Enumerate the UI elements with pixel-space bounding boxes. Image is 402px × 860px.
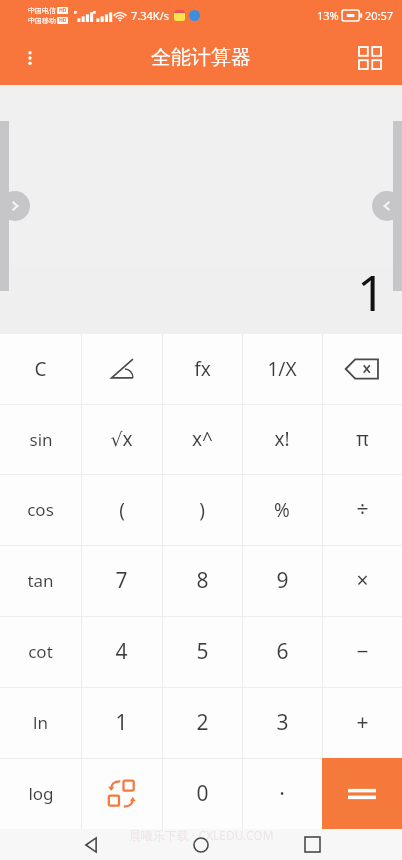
button[interactable]: ÷ (322, 474, 402, 545)
button[interactable]: 1 (81, 687, 162, 758)
button[interactable]: ln (0, 687, 81, 758)
button[interactable]: + (322, 687, 402, 758)
button[interactable]: 3 (242, 687, 322, 758)
staticText: HD (59, 7, 67, 14)
staticText: 20:57 (365, 8, 394, 23)
staticText: x^ (192, 426, 213, 452)
staticText: cos (27, 498, 54, 521)
button[interactable]: More options (8, 36, 52, 80)
staticText: 2 (196, 708, 209, 737)
staticText: · (279, 779, 285, 808)
staticText: fx (194, 356, 211, 382)
button[interactable]: 4 (81, 616, 162, 687)
staticText: cot (28, 640, 53, 663)
button[interactable]: x! (242, 404, 322, 474)
button[interactable]: 1/X (242, 334, 322, 404)
staticText: 1/X (267, 356, 297, 382)
staticText: sin (29, 428, 53, 451)
button[interactable]: ( (81, 474, 162, 545)
staticText: ( (119, 497, 125, 523)
button[interactable]: × (322, 545, 402, 616)
button[interactable]: 2 (162, 687, 242, 758)
staticText: % (274, 497, 290, 523)
staticText: 4 (115, 637, 128, 666)
staticText: ) (199, 497, 205, 523)
button[interactable]: 5 (162, 616, 242, 687)
button[interactable]: Grid view (348, 36, 392, 80)
staticText: 7.34K/s (131, 8, 169, 23)
button[interactable]: C (0, 334, 81, 404)
button[interactable]: % (242, 474, 322, 545)
staticText: 0 (196, 779, 209, 808)
staticText: 7 (115, 566, 128, 595)
button[interactable]: √x (81, 404, 162, 474)
button[interactable]: π (322, 404, 402, 474)
staticText: π (356, 426, 369, 452)
staticText: C (34, 356, 47, 382)
button[interactable]: 8 (162, 545, 242, 616)
staticText: 1 (357, 258, 386, 326)
staticText: 1 (115, 708, 128, 737)
staticText: 9 (276, 566, 289, 595)
staticText: HD (59, 17, 67, 24)
button[interactable]: · (242, 758, 322, 829)
button[interactable]: 0 (162, 758, 242, 829)
staticText: 6 (276, 637, 289, 666)
button[interactable]: sin (0, 404, 81, 474)
button[interactable]: fx (162, 334, 242, 404)
button[interactable]: Back (71, 829, 111, 860)
staticText: ÷ (356, 495, 369, 524)
staticText: 晨曦乐下载 · CXLEDU.COM (129, 827, 274, 843)
staticText: 中国移动 (28, 16, 56, 25)
staticText: 中国电信 (28, 6, 56, 15)
staticText: 3 (276, 708, 289, 737)
button[interactable]: Convert (81, 758, 162, 829)
button[interactable]: 9 (242, 545, 322, 616)
staticText: x! (274, 426, 290, 452)
button[interactable]: cos (0, 474, 81, 545)
staticText: × (356, 566, 369, 595)
button[interactable]: Angle mode (81, 334, 162, 404)
button[interactable]: tan (0, 545, 81, 616)
button[interactable]: Equals (322, 758, 402, 829)
button[interactable]: log (0, 758, 81, 829)
button[interactable]: Recents (292, 829, 332, 860)
staticText: tan (27, 569, 54, 592)
button[interactable]: 6 (242, 616, 322, 687)
staticText: − (356, 637, 369, 666)
staticText: 13% (317, 8, 339, 23)
button[interactable]: 7 (81, 545, 162, 616)
button[interactable]: Delete (322, 334, 402, 404)
staticText: 全能计算器 (151, 45, 251, 70)
button[interactable]: x^ (162, 404, 242, 474)
staticText: + (356, 708, 369, 737)
button[interactable]: ) (162, 474, 242, 545)
button[interactable]: cot (0, 616, 81, 687)
staticText: ln (33, 711, 48, 734)
button[interactable]: Home (181, 829, 221, 860)
staticText: √x (110, 426, 133, 452)
staticText: 8 (196, 566, 209, 595)
button[interactable]: − (322, 616, 402, 687)
staticText: 5 (196, 637, 209, 666)
staticText: log (28, 782, 54, 805)
